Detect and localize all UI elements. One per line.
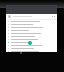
button[interactable] <box>6 23 57 26</box>
button[interactable] <box>6 35 57 38</box>
button[interactable] <box>6 32 57 35</box>
button[interactable]: More options <box>52 16 55 17</box>
button[interactable] <box>6 20 57 23</box>
button[interactable] <box>6 50 57 52</box>
button[interactable] <box>6 47 57 50</box>
button[interactable] <box>6 38 57 41</box>
button[interactable]: Account <box>8 15 11 18</box>
button[interactable] <box>6 26 57 29</box>
button[interactable]: Compose <box>28 41 32 45</box>
button[interactable] <box>6 44 57 47</box>
button[interactable] <box>6 29 57 32</box>
button[interactable] <box>6 41 57 44</box>
